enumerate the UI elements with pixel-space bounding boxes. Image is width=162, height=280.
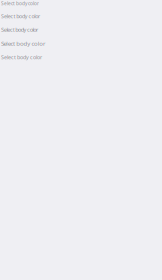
staticText: Select body color [1, 54, 42, 61]
staticText: Select body color [1, 26, 38, 33]
staticText: Select body color [1, 12, 40, 20]
staticText: Select body color [1, 39, 45, 48]
staticText: Select body color [1, 0, 39, 6]
